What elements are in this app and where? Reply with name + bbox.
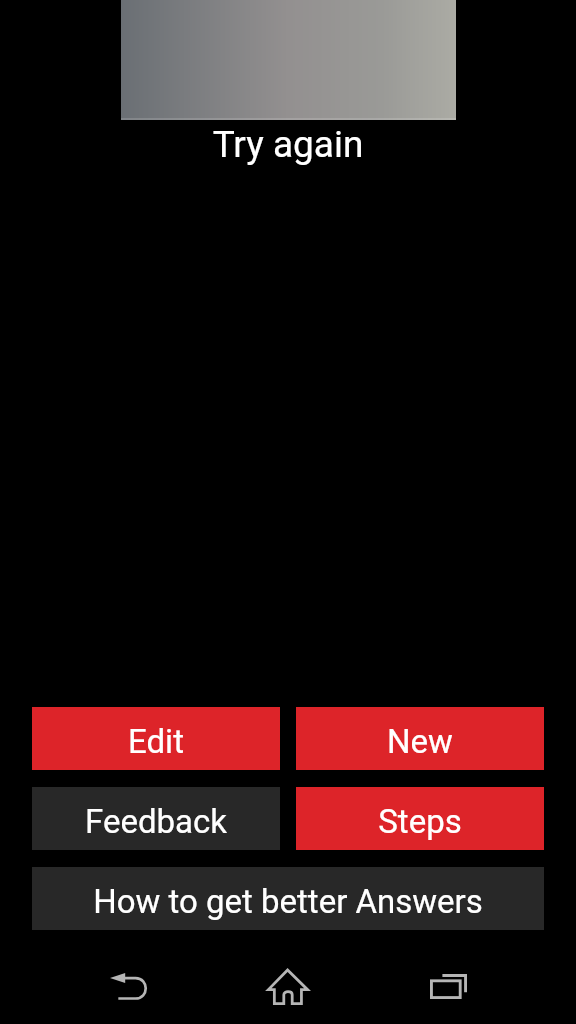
staticText: Edit bbox=[128, 722, 184, 761]
staticText: Try again bbox=[0, 123, 576, 166]
button[interactable]: Home bbox=[250, 948, 326, 1024]
button[interactable]: Edit bbox=[32, 707, 280, 770]
staticText: How to get better Answers bbox=[93, 882, 483, 921]
staticText: New bbox=[387, 722, 453, 761]
button[interactable]: Feedback bbox=[32, 787, 280, 850]
button[interactable]: Recent apps bbox=[410, 948, 486, 1024]
button[interactable]: Back bbox=[90, 948, 166, 1024]
button[interactable]: How to get better Answers bbox=[32, 867, 544, 930]
staticText: Feedback bbox=[85, 802, 227, 841]
button[interactable]: New bbox=[296, 707, 544, 770]
button[interactable]: Steps bbox=[296, 787, 544, 850]
staticText: Steps bbox=[378, 802, 462, 841]
